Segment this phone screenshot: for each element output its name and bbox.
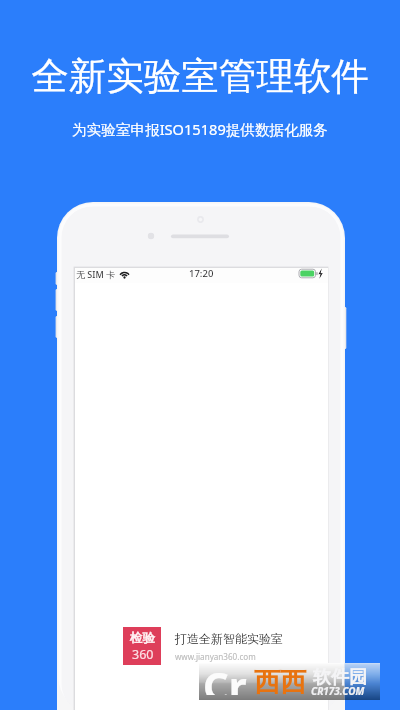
staticText: Cr (203, 658, 247, 695)
staticText: www.jianyan360.com (175, 651, 256, 662)
staticText: 全新实验室管理软件 (31, 53, 369, 100)
staticText: CR173.COM (311, 684, 365, 698)
staticText: 无 SIM 卡 (76, 268, 116, 280)
button[interactable]: 检验 (123, 627, 283, 665)
staticText: 17:20 (189, 267, 214, 280)
staticText: 西西 (254, 666, 306, 699)
staticText: 软件园 (313, 666, 367, 689)
staticText: 打造全新智能实验室 (175, 631, 283, 646)
staticText: 360 (132, 646, 154, 663)
staticText: 为实验室申报ISO15189提供数据化服务 (72, 119, 328, 139)
staticText: 检验 (130, 630, 155, 646)
